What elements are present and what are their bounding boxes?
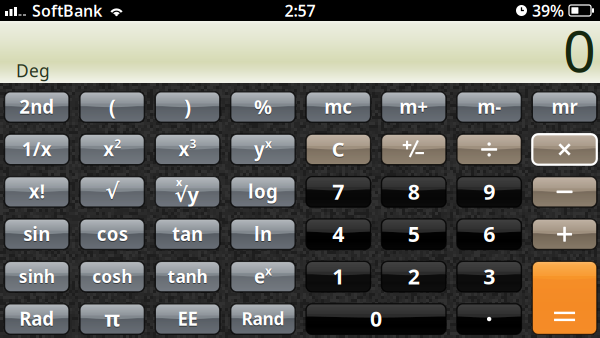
staticText: 7 bbox=[332, 177, 344, 205]
staticText: 8 bbox=[408, 177, 420, 205]
button[interactable]: tanh bbox=[155, 261, 220, 292]
button[interactable]: x! bbox=[4, 177, 69, 207]
staticText: mr bbox=[552, 94, 578, 119]
button[interactable]: log bbox=[231, 177, 295, 207]
staticText: 6 bbox=[483, 221, 495, 249]
staticText: m+ bbox=[399, 95, 428, 120]
staticText: 5 bbox=[408, 221, 420, 249]
button[interactable]: Decimal point bbox=[457, 304, 521, 334]
staticText: 1/x bbox=[22, 137, 52, 161]
staticText: tan bbox=[172, 221, 203, 246]
staticText: e bbox=[254, 265, 265, 290]
staticText: SoftBank bbox=[32, 0, 102, 21]
button[interactable]: 9 bbox=[457, 177, 521, 207]
staticText: ln bbox=[254, 221, 272, 246]
button[interactable]: cosh bbox=[80, 261, 144, 292]
staticText: 4 bbox=[332, 220, 344, 248]
button[interactable]: ( bbox=[80, 92, 144, 122]
staticText: sinh bbox=[19, 266, 55, 289]
button[interactable]: e bbox=[231, 261, 295, 292]
staticText: 3 bbox=[190, 136, 197, 152]
staticText: 0 bbox=[370, 304, 382, 333]
button[interactable]: x bbox=[155, 134, 220, 165]
staticText: 1 bbox=[332, 262, 344, 290]
staticText: x bbox=[265, 263, 272, 279]
button[interactable]: Divide bbox=[457, 134, 521, 165]
button[interactable]: Plus bbox=[532, 219, 597, 249]
button[interactable]: x bbox=[80, 134, 144, 165]
button[interactable]: 1 bbox=[306, 261, 371, 292]
button[interactable]: Multiply bbox=[532, 134, 597, 165]
staticText: C bbox=[332, 137, 345, 163]
staticText: x bbox=[265, 264, 272, 280]
staticText: Deg bbox=[16, 59, 50, 82]
staticText: log bbox=[248, 180, 278, 205]
button[interactable]: Plus minus bbox=[381, 134, 446, 165]
button[interactable]: sin bbox=[4, 219, 69, 249]
staticText: ln bbox=[254, 222, 272, 247]
staticText: log bbox=[248, 179, 278, 204]
button[interactable]: Equals bbox=[532, 261, 597, 334]
button[interactable]: 4 bbox=[306, 219, 371, 249]
button[interactable]: tan bbox=[155, 219, 220, 249]
staticText: π bbox=[104, 305, 120, 334]
button[interactable]: ) bbox=[155, 92, 220, 122]
staticText: m- bbox=[477, 95, 501, 120]
button[interactable]: 0 bbox=[306, 304, 446, 334]
staticText: cos bbox=[97, 222, 128, 247]
staticText: y bbox=[254, 137, 265, 161]
button[interactable]: π bbox=[80, 304, 144, 334]
staticText: EE bbox=[178, 307, 198, 332]
button[interactable]: 2nd bbox=[4, 92, 69, 122]
button[interactable]: Rand bbox=[231, 304, 295, 334]
staticText: ) bbox=[184, 93, 191, 122]
button[interactable]: x root of y bbox=[155, 177, 220, 207]
button[interactable]: cos bbox=[80, 219, 144, 249]
button[interactable]: mc bbox=[306, 92, 371, 122]
button[interactable]: 7 bbox=[306, 177, 371, 207]
button[interactable]: 2 bbox=[381, 261, 446, 292]
staticText: x bbox=[176, 175, 182, 189]
button[interactable]: m- bbox=[457, 92, 521, 122]
button[interactable]: sinh bbox=[4, 261, 69, 292]
button[interactable]: m+ bbox=[381, 92, 446, 122]
staticText: x bbox=[179, 137, 190, 161]
staticText: m+ bbox=[399, 94, 428, 119]
button[interactable]: √ bbox=[80, 177, 144, 207]
button[interactable]: EE bbox=[155, 304, 220, 334]
staticText: 9 bbox=[483, 177, 495, 205]
staticText: 2nd bbox=[19, 94, 54, 119]
button[interactable]: Minus bbox=[532, 177, 597, 207]
staticText: Rand bbox=[241, 308, 284, 331]
staticText: 3 bbox=[190, 137, 197, 153]
staticText: 9 bbox=[483, 178, 495, 206]
staticText: x bbox=[265, 136, 272, 152]
button[interactable]: Rad bbox=[4, 304, 69, 334]
button[interactable]: mr bbox=[532, 92, 597, 122]
staticText: 2 bbox=[408, 263, 420, 291]
button[interactable]: C bbox=[306, 134, 371, 165]
staticText: x! bbox=[29, 179, 45, 204]
staticText: 2 bbox=[114, 136, 121, 152]
staticText: 2 bbox=[408, 262, 420, 290]
staticText: cos bbox=[97, 221, 128, 246]
staticText: ( bbox=[109, 93, 116, 122]
staticText: √y bbox=[175, 181, 199, 207]
button[interactable]: 3 bbox=[457, 261, 521, 292]
staticText: √ bbox=[105, 180, 119, 204]
button[interactable]: ln bbox=[231, 219, 295, 249]
staticText: x bbox=[265, 137, 272, 153]
staticText: Rad bbox=[19, 306, 54, 331]
button[interactable]: 6 bbox=[457, 219, 521, 249]
staticText: 3 bbox=[483, 263, 495, 291]
button[interactable]: % bbox=[231, 92, 295, 122]
button[interactable]: 5 bbox=[381, 219, 446, 249]
staticText: 3 bbox=[483, 262, 495, 290]
button[interactable]: y bbox=[231, 134, 295, 165]
button[interactable]: 8 bbox=[381, 177, 446, 207]
staticText: % bbox=[254, 93, 272, 120]
staticText: ) bbox=[184, 92, 191, 121]
staticText: 8 bbox=[408, 178, 420, 206]
button[interactable]: 1/x bbox=[4, 134, 69, 165]
staticText: 6 bbox=[483, 220, 495, 248]
